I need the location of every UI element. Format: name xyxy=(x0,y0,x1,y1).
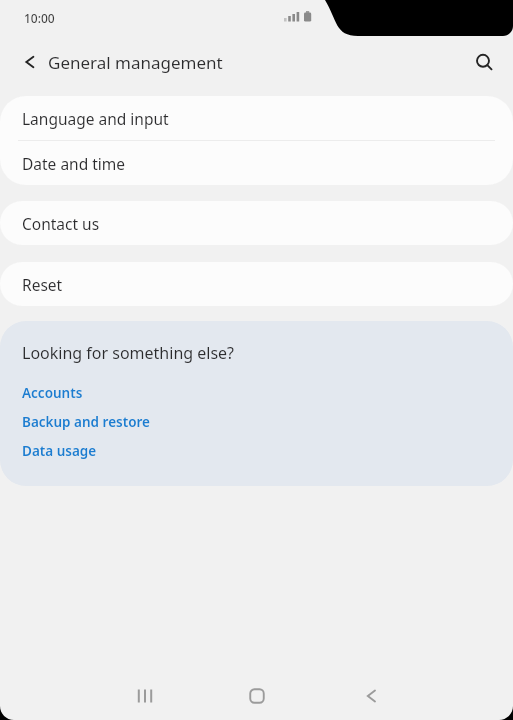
button[interactable]: Contact us xyxy=(0,201,513,245)
staticText: Reset xyxy=(22,274,63,295)
staticText: Looking for something else? xyxy=(22,342,235,364)
staticText: 10:00 xyxy=(24,10,55,26)
staticText: General management xyxy=(48,51,223,74)
button[interactable]: Back xyxy=(10,44,46,80)
button[interactable]: Reset xyxy=(0,262,513,306)
button[interactable]: Back xyxy=(349,672,391,720)
button[interactable]: Language and input xyxy=(0,96,513,140)
button[interactable]: Accounts xyxy=(0,378,513,407)
button[interactable]: Date and time xyxy=(0,141,513,185)
staticText: Date and time xyxy=(22,153,126,174)
button[interactable]: Recents xyxy=(124,672,166,720)
button[interactable]: Search xyxy=(465,43,503,81)
staticText: Backup and restore xyxy=(22,413,150,431)
staticText: Accounts xyxy=(22,384,83,402)
staticText: Data usage xyxy=(22,442,97,460)
staticText: Contact us xyxy=(22,213,100,234)
button[interactable]: Data usage xyxy=(0,436,513,465)
staticText: Language and input xyxy=(22,108,169,129)
button[interactable]: Backup and restore xyxy=(0,407,513,436)
button[interactable]: Home xyxy=(236,672,278,720)
